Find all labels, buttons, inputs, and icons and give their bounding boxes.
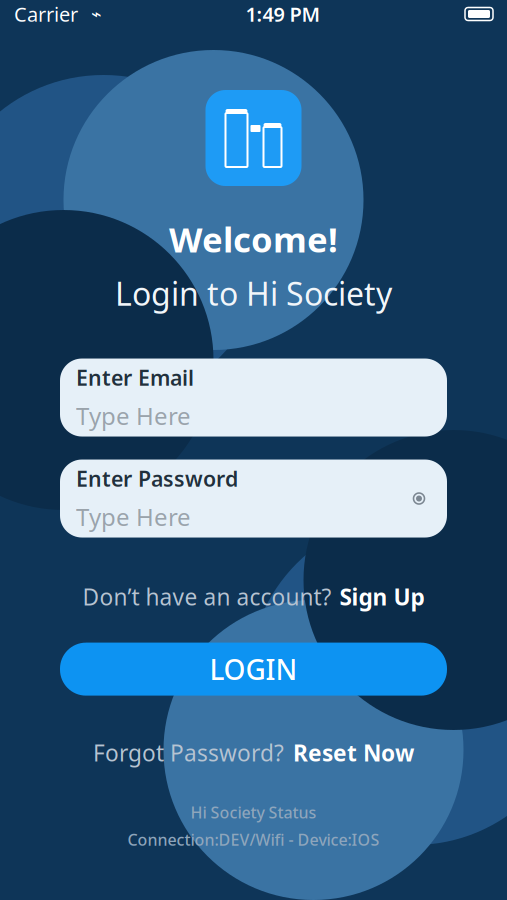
staticText: Welcome! [169, 216, 338, 262]
button[interactable]: Don’t have an account? [72, 575, 434, 618]
staticText: Enter Email [76, 363, 194, 392]
staticText: Carrier [14, 1, 83, 27]
staticText: Type Here [76, 400, 191, 432]
staticText: Login to Hi Society [115, 272, 392, 314]
staticText: Don’t have an account? [82, 581, 331, 612]
staticText: Forgot Password? [93, 738, 284, 768]
button[interactable]: Enter Email [60, 358, 447, 436]
staticText: Type Here [76, 501, 191, 533]
staticText: Connection:DEV/Wifi - Device:IOS [127, 829, 379, 850]
staticText: Hi Society Status [190, 802, 316, 823]
button[interactable]: Forgot Password? [83, 732, 424, 774]
staticText: Sign Up [339, 581, 424, 612]
staticText: Reset Now [293, 738, 414, 768]
staticText: 1:49 PM [245, 1, 320, 27]
button[interactable]: LOGIN [60, 643, 447, 696]
staticText: Enter Password [76, 464, 238, 493]
button[interactable]: Enter Password [60, 459, 447, 537]
staticText: ⌁ [91, 4, 101, 24]
staticText: LOGIN [209, 650, 297, 688]
